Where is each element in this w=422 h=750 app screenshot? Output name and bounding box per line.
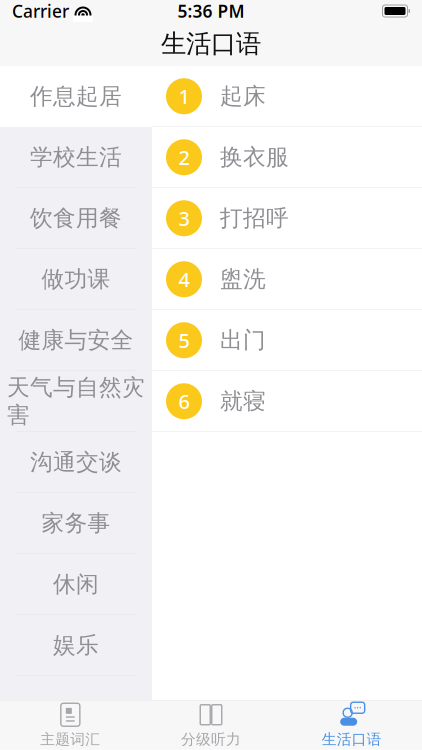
staticText: 起床 (220, 82, 266, 110)
button[interactable]: 学校生活 (0, 127, 152, 188)
staticText: 盥洗 (220, 265, 266, 293)
button[interactable]: 娱乐 (0, 615, 152, 676)
staticText: Carrier (12, 0, 69, 22)
staticText: 5:36 PM (177, 0, 244, 22)
staticText: 打招呼 (220, 204, 289, 232)
button[interactable]: 做功课 (0, 249, 152, 310)
staticText: 出门 (220, 326, 266, 354)
staticText: 家务事 (41, 509, 110, 537)
button[interactable]: 1 (152, 66, 422, 127)
staticText: 学校生活 (30, 143, 122, 171)
button[interactable]: 分级听力 (141, 701, 281, 750)
staticText: 1 (178, 83, 189, 110)
button[interactable]: 2 (152, 127, 422, 188)
button[interactable]: 休闲 (0, 554, 152, 615)
staticText: 做功课 (41, 265, 110, 293)
button[interactable]: 饮食用餐 (0, 188, 152, 249)
staticText: 天气与自然灾害 (7, 373, 145, 429)
button[interactable]: 天气与自然灾害 (0, 371, 152, 432)
staticText: 生活口语 (161, 28, 261, 59)
button[interactable]: 4 (152, 249, 422, 310)
button[interactable]: 主题词汇 (0, 701, 141, 750)
button[interactable]: 3 (152, 188, 422, 249)
staticText: 作息起居 (30, 83, 122, 110)
staticText: 5 (178, 327, 189, 354)
staticText: 4 (178, 266, 189, 293)
button[interactable]: 健康与安全 (0, 310, 152, 371)
staticText: 娱乐 (53, 631, 99, 659)
staticText: 生活口语 (322, 730, 382, 748)
staticText: 2 (178, 144, 189, 171)
staticText: 饮食用餐 (30, 204, 122, 232)
staticText: 就寝 (220, 387, 266, 415)
staticText: 沟通交谈 (30, 448, 122, 476)
button[interactable]: 5 (152, 310, 422, 371)
staticText: 分级听力 (181, 730, 241, 748)
button[interactable]: 作息起居 (0, 66, 152, 127)
button[interactable]: 6 (152, 371, 422, 432)
staticText: 6 (178, 388, 189, 415)
button[interactable]: 沟通交谈 (0, 432, 152, 493)
staticText: 3 (178, 205, 189, 232)
staticText: 健康与安全 (18, 326, 133, 354)
button[interactable]: 生活口语 (281, 701, 422, 750)
button[interactable]: 家务事 (0, 493, 152, 554)
staticText: 休闲 (53, 570, 99, 598)
staticText: 主题词汇 (40, 730, 100, 748)
staticText: 换衣服 (220, 143, 289, 171)
